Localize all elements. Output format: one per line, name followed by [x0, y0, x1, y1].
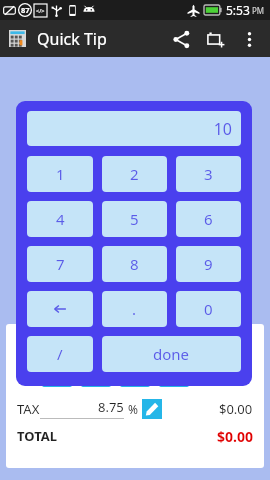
staticText: 5:53 [226, 2, 250, 18]
staticText: 5 [130, 209, 139, 229]
staticText: Quick Tip [37, 28, 107, 50]
button[interactable]: Add to collection [198, 22, 232, 56]
staticText: . [132, 299, 137, 319]
staticText: 8 [130, 254, 139, 274]
staticText: 8.75 [98, 398, 124, 416]
staticText: 2 [130, 164, 139, 184]
staticText: 9 [204, 254, 213, 274]
button[interactable]: . [102, 291, 167, 327]
button[interactable]: 4 [27, 201, 93, 237]
staticText: / [57, 344, 63, 364]
button[interactable]: 9 [176, 246, 241, 282]
button[interactable]: 15 [81, 370, 111, 387]
staticText: 6 [204, 209, 213, 229]
staticText: PM [252, 5, 265, 16]
staticText: </> [36, 7, 45, 14]
staticText: 87 [21, 5, 30, 15]
button[interactable]: 5 [102, 201, 167, 237]
button[interactable]: Share [164, 22, 198, 56]
staticText: 7 [56, 254, 65, 274]
staticText: $0.00 [219, 400, 253, 418]
button[interactable]: 2 [102, 156, 167, 192]
staticText: done [153, 344, 190, 364]
staticText: 10 [213, 118, 232, 140]
button[interactable]: 0 [176, 291, 241, 327]
button[interactable]: done [102, 336, 241, 372]
staticText: TAX [17, 400, 40, 418]
button[interactable]: 20 [120, 370, 150, 387]
button[interactable]: 10 [42, 370, 72, 387]
staticText: 0 [204, 299, 213, 319]
button[interactable]: Edit tax [142, 399, 162, 419]
button[interactable]: 25 [159, 370, 189, 387]
staticText: 25 [168, 371, 181, 386]
staticText: % [128, 401, 138, 417]
button[interactable]: 7 [27, 246, 93, 282]
button[interactable]: 8.75 [40, 398, 124, 419]
button[interactable]: 1 [27, 156, 93, 192]
button[interactable]: 6 [176, 201, 241, 237]
button[interactable]: Backspace [27, 291, 93, 327]
button[interactable]: 8 [102, 246, 167, 282]
staticText: 1 [56, 164, 65, 184]
button[interactable]: 10 [27, 111, 241, 146]
staticText: 20 [129, 371, 142, 386]
staticText: 3 [204, 164, 213, 184]
button[interactable]: More options [232, 22, 266, 56]
staticText: 10 [51, 371, 64, 386]
staticText: 15 [90, 371, 103, 386]
staticText: TOTAL [17, 427, 57, 445]
button[interactable]: / [27, 336, 93, 372]
button[interactable]: 3 [176, 156, 241, 192]
staticText: $0.00 [217, 427, 253, 446]
staticText: 4 [56, 209, 65, 229]
